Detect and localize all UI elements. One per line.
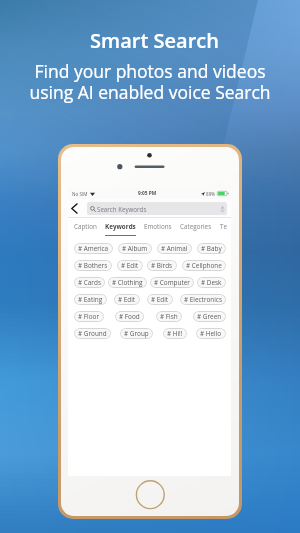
staticText: # Ground: [78, 329, 107, 338]
staticText: Caption: [74, 222, 97, 231]
staticText: Categories: [180, 222, 212, 231]
button[interactable]: # Clothing: [108, 277, 147, 288]
button[interactable]: # Cellphone: [182, 260, 226, 271]
staticText: # Group: [124, 329, 149, 338]
staticText: # Food: [119, 312, 140, 321]
staticText: # Desk: [201, 278, 222, 287]
button[interactable]: # Cards: [74, 277, 105, 288]
button[interactable]: # Desk: [197, 277, 226, 288]
staticText: # America: [78, 244, 109, 253]
staticText: Find your photos and videos using AI ena…: [29, 59, 271, 104]
button[interactable]: # Ground: [74, 328, 111, 339]
button[interactable]: Categories: [180, 218, 212, 236]
button[interactable]: # Eating: [74, 294, 107, 305]
staticText: # Floor: [78, 312, 100, 321]
staticText: # Bothers: [78, 261, 108, 270]
staticText: # Fish: [160, 312, 178, 321]
button[interactable]: Emotions: [144, 218, 172, 236]
button[interactable]: # Album: [118, 243, 152, 254]
staticText: 89%: [206, 191, 216, 197]
button[interactable]: # Hi!!: [163, 328, 187, 339]
staticText: # Hello: [200, 329, 222, 338]
staticText: # Hi!!: [167, 329, 183, 338]
button[interactable]: # Food: [115, 311, 144, 322]
button[interactable]: # Electronics: [180, 294, 226, 305]
staticText: Te: [220, 222, 228, 231]
staticText: Keywords: [105, 222, 136, 231]
button[interactable]: # Computer: [150, 277, 194, 288]
button[interactable]: # Baby: [197, 243, 226, 254]
button[interactable]: Back: [68, 199, 81, 218]
staticText: # Eating: [78, 295, 103, 304]
staticText: # Baby: [201, 244, 222, 253]
staticText: # Cellphone: [186, 261, 222, 270]
staticText: # Edit: [118, 295, 136, 304]
button[interactable]: # Fish: [156, 311, 182, 322]
staticText: No SIM: [72, 191, 88, 197]
button[interactable]: # Bothers: [74, 260, 112, 271]
staticText: Smart Search: [90, 27, 219, 54]
staticText: # Electronics: [184, 295, 222, 304]
staticText: # Edit: [151, 295, 169, 304]
staticText: 9:05 PM: [138, 190, 157, 197]
staticText: # Computer: [154, 278, 190, 287]
button[interactable]: Te: [220, 218, 228, 236]
button[interactable]: # Group: [120, 328, 153, 339]
staticText: # Clothing: [112, 278, 143, 287]
staticText: Emotions: [144, 222, 172, 231]
staticText: # Animal: [161, 244, 188, 253]
staticText: # Green: [197, 312, 222, 321]
button[interactable]: # Animal: [157, 243, 192, 254]
button[interactable]: # Edit: [147, 294, 173, 305]
staticText: # Cards: [78, 278, 101, 287]
button[interactable]: # Hello: [196, 328, 226, 339]
button[interactable]: # Birds: [147, 260, 177, 271]
button[interactable]: # America: [74, 243, 113, 254]
staticText: # Birds: [151, 261, 173, 270]
button[interactable]: # Floor: [74, 311, 104, 322]
button[interactable]: # Green: [193, 311, 226, 322]
staticText: Search Keywords: [97, 205, 147, 213]
button[interactable]: Caption: [74, 218, 97, 236]
button[interactable]: # Edit: [114, 294, 140, 305]
button[interactable]: # Edit: [117, 260, 143, 271]
button[interactable]: Keywords: [105, 218, 136, 236]
staticText: # Album: [122, 244, 148, 253]
staticText: # Edit: [121, 261, 139, 270]
button[interactable]: Search Keywords: [87, 202, 227, 215]
